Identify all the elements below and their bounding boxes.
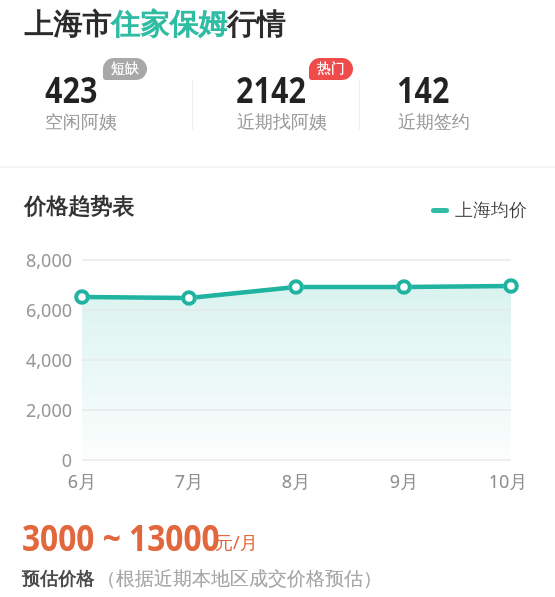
staticText: 热门 <box>317 60 345 78</box>
staticText: 元/月 <box>215 530 258 555</box>
staticText: 10月 <box>473 469 543 494</box>
staticText: 3000 ~ 13000 <box>22 513 220 562</box>
staticText: 短缺 <box>111 60 139 78</box>
staticText: 2,000 <box>10 398 72 423</box>
button[interactable]: 2142 <box>236 65 319 114</box>
staticText: 近期找阿姨 <box>237 111 327 134</box>
staticText: 预估价格 <box>22 568 94 591</box>
button[interactable]: 423 <box>45 65 107 114</box>
staticText: 空闲阿姨 <box>45 111 117 134</box>
staticText: 上海均价 <box>455 199 527 222</box>
staticText: 8,000 <box>10 248 72 273</box>
staticText: 7月 <box>154 469 224 494</box>
staticText: 0 <box>10 448 72 473</box>
button[interactable]: 142 <box>397 65 459 114</box>
staticText: 423 <box>45 65 98 114</box>
staticText: 上海市住家保姆行情 <box>24 6 285 43</box>
staticText: 6月 <box>47 469 117 494</box>
staticText: 142 <box>397 65 450 114</box>
staticText: 8月 <box>261 469 331 494</box>
staticText: 2142 <box>236 65 306 114</box>
button[interactable]: 上海均价 <box>431 199 527 222</box>
staticText: （根据近期本地区成交价格预估） <box>97 567 382 591</box>
staticText: 4,000 <box>10 348 72 373</box>
staticText: 6,000 <box>10 298 72 323</box>
staticText: 价格趋势表 <box>24 193 134 221</box>
staticText: 近期签约 <box>398 111 470 134</box>
staticText: 9月 <box>369 469 439 494</box>
